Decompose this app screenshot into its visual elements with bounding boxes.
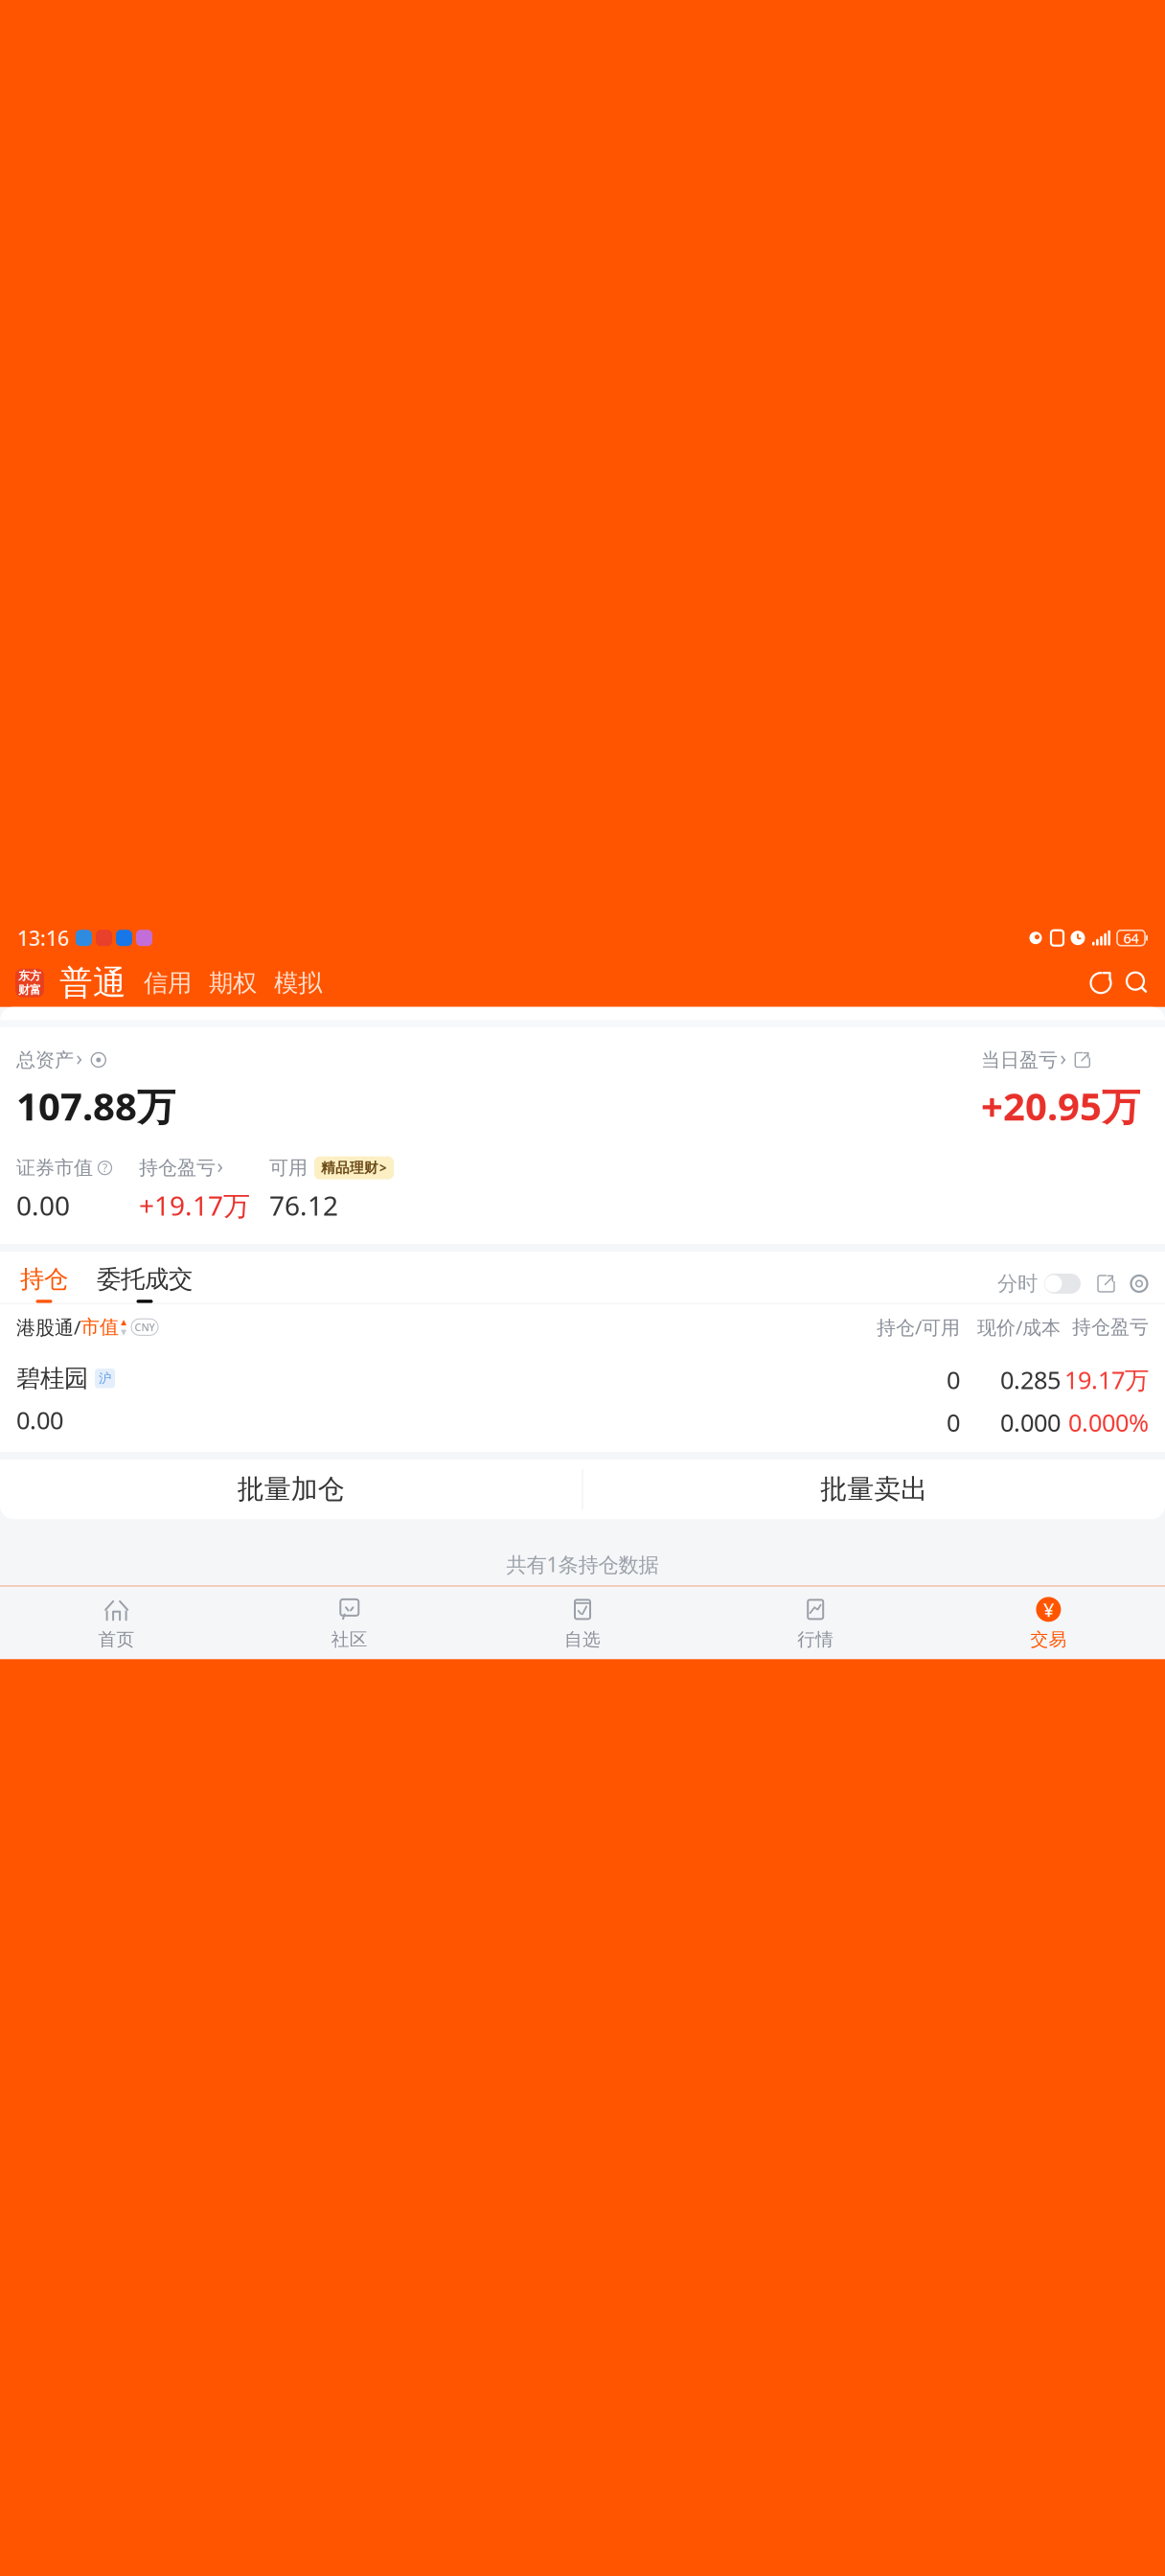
button[interactable]: 设置 (1116, 1274, 1149, 1293)
button[interactable]: 行情 (699, 1586, 932, 1659)
button[interactable]: 总资产 (16, 1048, 107, 1072)
staticText: 持仓盈亏 (139, 1156, 216, 1180)
button[interactable]: 委托成交 (72, 1264, 196, 1303)
staticText: > (379, 1159, 387, 1176)
staticText: 交易 (1030, 1629, 1067, 1651)
button[interactable]: ¥ (932, 1586, 1165, 1659)
button[interactable]: 导出 (1081, 1274, 1116, 1294)
staticText: 碧桂园 (16, 1364, 88, 1393)
staticText: 市值 (80, 1315, 119, 1339)
staticText: 分时 (997, 1271, 1038, 1296)
staticText: 0.000 (1000, 1406, 1061, 1438)
staticText: 自选 (564, 1629, 601, 1651)
button[interactable]: 持仓盈亏 (139, 1156, 269, 1223)
staticText: 64 (1123, 929, 1139, 947)
button[interactable]: 自选 (466, 1586, 699, 1659)
staticText: 委托成交 (97, 1264, 193, 1294)
staticText: 首页 (98, 1629, 135, 1651)
button[interactable]: 碧桂园 (0, 1350, 1165, 1452)
staticText: ▲ (121, 1318, 126, 1326)
button[interactable]: 批量加仓 (0, 1460, 582, 1519)
staticText: 19.17万 (1064, 1364, 1149, 1396)
button[interactable]: 普通 (44, 959, 126, 1007)
staticText: 东方 (18, 969, 41, 983)
staticText: +19.17万 (139, 1187, 250, 1223)
button[interactable]: 信用 (126, 962, 192, 1004)
staticText: ¥ (1043, 1597, 1054, 1622)
staticText: 0.00 (16, 1187, 70, 1223)
staticText: 证券市值 (16, 1156, 93, 1180)
staticText: 0.000% (1068, 1406, 1149, 1438)
staticText: 批量加仓 (237, 1473, 345, 1506)
staticText: ▼ (121, 1328, 126, 1336)
staticText: 107.88万 (16, 1080, 175, 1131)
staticText: 行情 (797, 1629, 834, 1651)
staticText: 共有1条持仓数据 (506, 1551, 659, 1578)
staticText: 当日盈亏 (981, 1048, 1058, 1072)
staticText: 精品理财 (321, 1159, 378, 1177)
staticText: 76.12 (269, 1187, 338, 1223)
button[interactable]: 分时 (997, 1271, 1081, 1296)
staticText: 0.285 (1000, 1364, 1061, 1396)
staticText: 持仓盈亏 (1072, 1315, 1149, 1339)
staticText: 0.00 (16, 1404, 63, 1436)
button[interactable]: 当日盈亏 (981, 1048, 1092, 1072)
staticText: 总资产 (16, 1048, 74, 1072)
staticText: ? (103, 1160, 107, 1175)
staticText: 沪 (99, 1371, 111, 1386)
button[interactable]: 首页 (0, 1586, 233, 1659)
staticText: 港股通/ (16, 1314, 80, 1340)
button[interactable]: 刷新 (1088, 971, 1113, 995)
button[interactable]: 模拟 (257, 962, 322, 1004)
button[interactable]: 搜索 (1113, 971, 1150, 995)
staticText: 0 (947, 1364, 960, 1396)
staticText: 可用 (269, 1156, 308, 1180)
staticText: +20.95万 (981, 1080, 1140, 1131)
staticText: 模拟 (274, 968, 322, 998)
staticText: CNY (135, 1320, 155, 1334)
button[interactable]: 期权 (192, 962, 257, 1004)
staticText: 普通 (59, 963, 126, 1003)
staticText: 持仓 (20, 1264, 68, 1294)
staticText: 期权 (209, 968, 257, 998)
staticText: 信用 (144, 968, 192, 998)
staticText: 持仓/可用 (877, 1314, 960, 1340)
staticText: 财富 (18, 983, 41, 997)
button[interactable]: 精品理财 (314, 1156, 394, 1179)
staticText: 社区 (331, 1629, 368, 1651)
staticText: 现价/成本 (977, 1314, 1061, 1340)
button[interactable]: 持仓 (16, 1264, 72, 1303)
staticText: 0 (947, 1406, 960, 1438)
staticText: 13:16 (17, 924, 69, 951)
staticText: 批量卖出 (820, 1473, 928, 1506)
button[interactable]: 批量卖出 (583, 1460, 1165, 1519)
button[interactable]: 社区 (233, 1586, 466, 1659)
